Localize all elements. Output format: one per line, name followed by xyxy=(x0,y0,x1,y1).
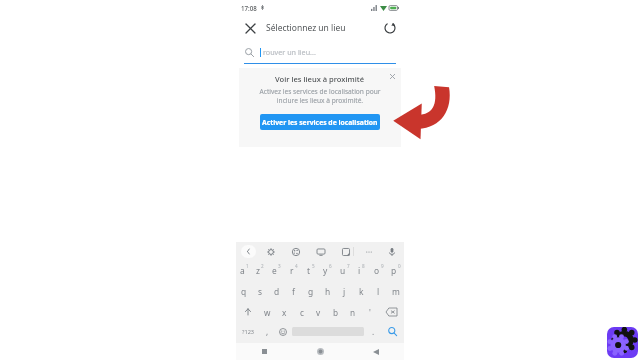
staticText: 0 xyxy=(398,263,401,269)
button[interactable]: Back xyxy=(348,343,404,360)
other: Logo xyxy=(607,327,638,358)
staticText: s xyxy=(258,286,263,297)
button[interactable]: Emoji xyxy=(275,322,290,341)
staticText: h xyxy=(325,286,331,297)
staticText: t xyxy=(307,265,311,276)
button[interactable]: Search xyxy=(381,322,404,341)
staticText: g xyxy=(308,286,314,297)
button[interactable]: t xyxy=(302,260,319,281)
staticText: 8 xyxy=(362,263,365,269)
button[interactable]: Shift xyxy=(236,302,259,322)
button[interactable]: Backspace xyxy=(378,302,404,322)
staticText: 1 xyxy=(246,263,249,269)
staticText: k xyxy=(359,286,364,297)
button[interactable]: x xyxy=(276,302,293,322)
button[interactable]: n xyxy=(344,302,361,322)
staticText: 5 xyxy=(312,263,315,269)
staticText: . xyxy=(372,326,375,337)
staticText: z xyxy=(256,265,260,276)
button[interactable]: Clipboard xyxy=(314,245,327,258)
staticText: 6 xyxy=(329,263,332,269)
staticText: Activer les services de localisation xyxy=(262,118,378,127)
staticText: c xyxy=(300,307,304,318)
staticText: 3 xyxy=(278,263,281,269)
button[interactable]: e xyxy=(268,260,285,281)
button[interactable]: s xyxy=(252,281,268,302)
button[interactable]: g xyxy=(302,281,319,302)
button[interactable]: r xyxy=(285,260,302,281)
button[interactable]: m xyxy=(387,281,404,302)
staticText: y xyxy=(323,265,328,276)
button[interactable]: . xyxy=(366,322,381,341)
staticText: ' xyxy=(369,307,371,318)
staticText: m xyxy=(392,286,400,297)
button[interactable]: u xyxy=(336,260,353,281)
button[interactable]: Refresh xyxy=(382,20,398,36)
button[interactable]: ' xyxy=(361,302,378,322)
button[interactable]: z xyxy=(252,260,268,281)
staticText: x xyxy=(282,307,287,318)
button[interactable]: j xyxy=(336,281,353,302)
button[interactable]: w xyxy=(259,302,276,322)
staticText: rouver un lieu... xyxy=(263,47,316,57)
button[interactable]: i xyxy=(353,260,370,281)
staticText: l xyxy=(377,286,380,297)
button[interactable]: rouver un lieu... xyxy=(236,41,404,63)
staticText: o xyxy=(374,265,380,276)
staticText: e xyxy=(272,265,277,276)
staticText: f xyxy=(292,286,295,297)
button[interactable]: h xyxy=(319,281,336,302)
button[interactable]: Home xyxy=(292,343,348,360)
staticText: a xyxy=(240,265,245,276)
staticText: q xyxy=(241,286,247,297)
staticText: u xyxy=(340,265,346,276)
button[interactable]: Voice input xyxy=(385,245,398,258)
staticText: v xyxy=(316,307,321,318)
staticText: j xyxy=(343,286,346,297)
button[interactable]: f xyxy=(285,281,302,302)
staticText: d xyxy=(274,286,280,297)
staticText: 9 xyxy=(381,263,384,269)
staticText: , xyxy=(266,326,269,337)
staticText: Sélectionnez un lieu xyxy=(266,22,346,34)
button[interactable]: a xyxy=(236,260,252,281)
staticText: i xyxy=(358,265,361,276)
button[interactable]: o xyxy=(370,260,387,281)
staticText: 4 xyxy=(295,263,298,269)
button[interactable]: y xyxy=(319,260,336,281)
button[interactable]: Close xyxy=(242,20,258,36)
button[interactable]: ?123 xyxy=(236,322,260,341)
button[interactable]: , xyxy=(260,322,275,341)
button[interactable]: Activer les services de localisation xyxy=(260,114,380,130)
staticText: Voir les lieux à proximité xyxy=(275,74,365,84)
staticText: n xyxy=(350,307,356,318)
staticText: ?123 xyxy=(242,328,255,336)
staticText: r xyxy=(290,265,294,276)
staticText: b xyxy=(333,307,339,318)
staticText: Activez les services de localisation pou… xyxy=(249,87,391,105)
button[interactable]: More options xyxy=(362,245,375,258)
staticText: p xyxy=(391,265,397,276)
staticText: w xyxy=(264,307,271,318)
button[interactable]: Expand toolbar xyxy=(241,245,256,258)
button[interactable]: k xyxy=(353,281,370,302)
button[interactable]: q xyxy=(236,281,252,302)
button[interactable]: l xyxy=(370,281,387,302)
button[interactable]: Dismiss xyxy=(387,71,398,82)
button[interactable]: Themes xyxy=(289,245,302,258)
button[interactable]: d xyxy=(268,281,285,302)
staticText: 7 xyxy=(347,263,350,269)
button[interactable]: b xyxy=(327,302,344,322)
button[interactable]: p xyxy=(387,260,404,281)
staticText: 2 xyxy=(261,263,264,269)
button[interactable]: c xyxy=(293,302,310,322)
staticText: 17:08 xyxy=(241,4,257,12)
button[interactable]: Sticker xyxy=(339,245,352,258)
button[interactable]: v xyxy=(310,302,327,322)
button[interactable]: Recent apps xyxy=(236,343,292,360)
button[interactable]: Settings xyxy=(264,245,277,258)
